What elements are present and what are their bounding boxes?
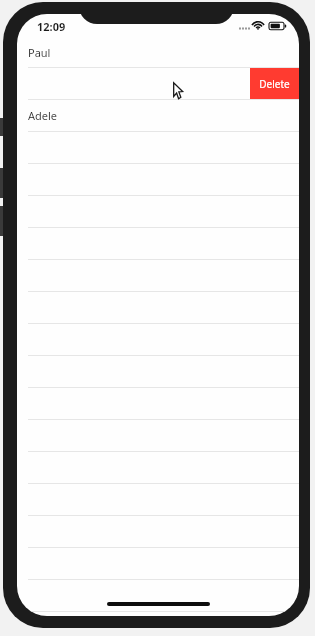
button[interactable] <box>17 68 299 99</box>
other: Pointer <box>172 82 186 100</box>
button[interactable]: Adele <box>17 100 299 131</box>
button[interactable]: Paul <box>17 38 299 67</box>
staticText: 12:09 <box>37 19 66 34</box>
button[interactable]: Delete <box>250 68 299 99</box>
button[interactable] <box>17 612 299 616</box>
staticText: Delete <box>259 77 290 91</box>
staticText: Paul <box>28 45 51 60</box>
button[interactable] <box>17 580 299 611</box>
staticText: Adele <box>28 108 58 123</box>
